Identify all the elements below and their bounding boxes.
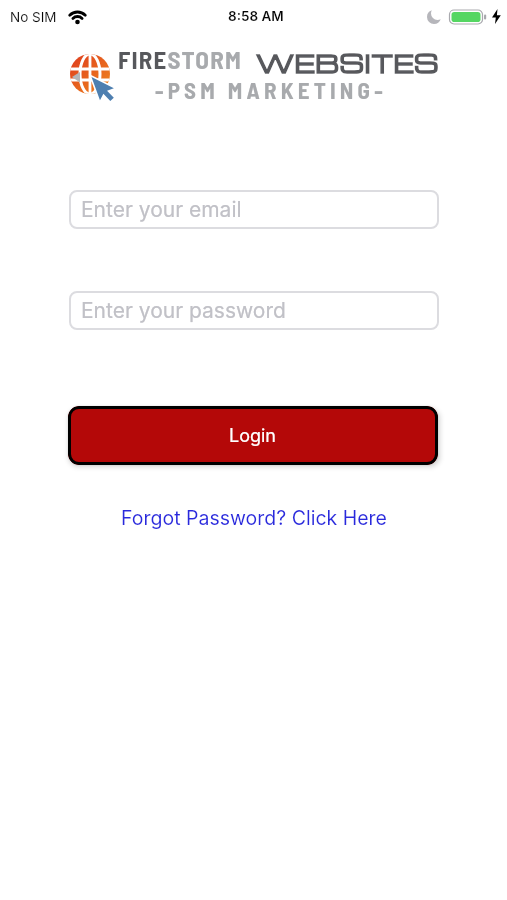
staticText: Enter your password xyxy=(81,298,286,323)
button[interactable]: Login xyxy=(68,406,438,465)
staticText: 8:58 AM xyxy=(228,8,284,24)
staticText: -PSM MARKETING- xyxy=(155,76,387,104)
staticText: FIRESTORM xyxy=(118,44,242,74)
staticText: No SIM xyxy=(10,9,57,25)
staticText: Enter your email xyxy=(81,197,242,222)
staticText: WEBSITES xyxy=(256,46,439,79)
staticText: WEBSITES xyxy=(256,46,439,79)
button[interactable]: Forgot Password? Click Here xyxy=(0,506,507,530)
button[interactable]: Enter your password xyxy=(69,291,439,330)
staticText: Forgot Password? Click Here xyxy=(121,506,387,530)
button[interactable]: Enter your email xyxy=(69,190,439,229)
staticText: Login xyxy=(229,425,277,447)
